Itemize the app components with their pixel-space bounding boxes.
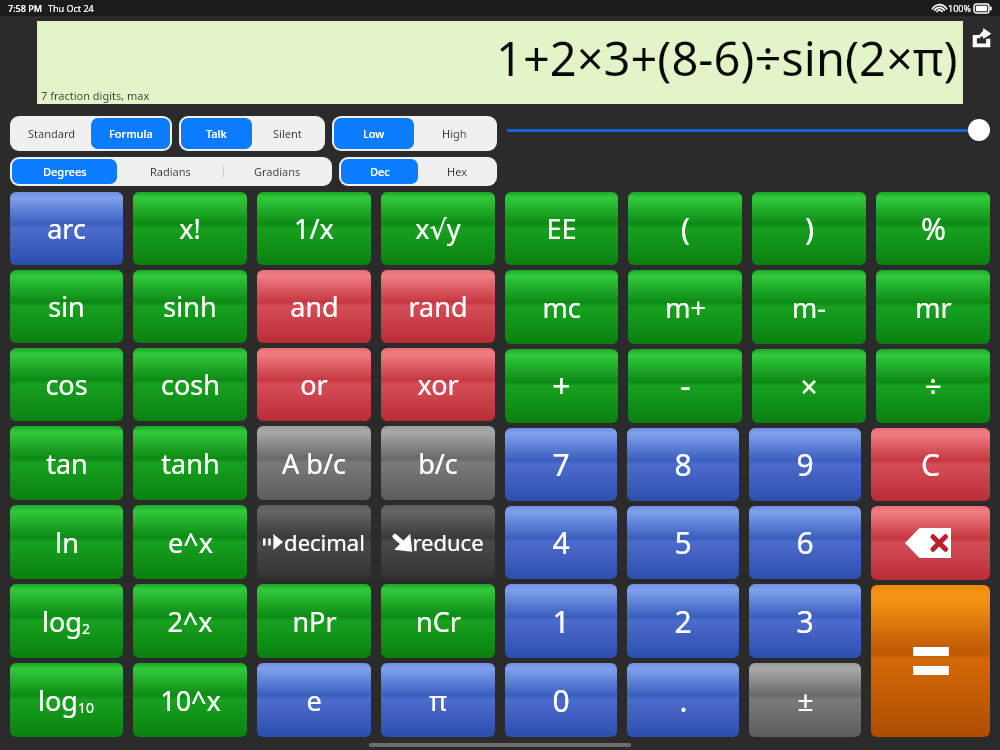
button[interactable]: rand bbox=[381, 270, 495, 343]
staticText: + bbox=[552, 364, 571, 408]
button[interactable]: m- bbox=[752, 270, 866, 344]
staticText: b/c bbox=[418, 445, 458, 482]
staticText: reduce bbox=[412, 527, 484, 557]
button[interactable]: C bbox=[871, 428, 990, 501]
button[interactable]: 10^x bbox=[133, 663, 247, 737]
button[interactable]: e^x bbox=[133, 505, 247, 579]
button[interactable]: nPr bbox=[257, 584, 371, 658]
button[interactable]: A b/c bbox=[257, 426, 371, 500]
staticText: mr bbox=[915, 289, 952, 326]
button[interactable]: Silent bbox=[252, 118, 323, 149]
button[interactable]: Dec bbox=[341, 159, 418, 184]
button[interactable]: 0 bbox=[505, 663, 617, 737]
button[interactable]: 8 bbox=[627, 428, 739, 501]
button[interactable]: x! bbox=[133, 192, 247, 265]
button[interactable]: - bbox=[628, 349, 742, 423]
button[interactable]: Low bbox=[334, 118, 414, 149]
button[interactable]: 2^x bbox=[133, 584, 247, 658]
staticText: Low bbox=[363, 126, 385, 141]
button[interactable]: 9 bbox=[749, 428, 861, 501]
staticText: ln bbox=[55, 524, 79, 561]
button[interactable]: π bbox=[381, 663, 495, 737]
staticText: 9 bbox=[796, 444, 814, 485]
staticText: and bbox=[290, 288, 339, 325]
button[interactable]: 6 bbox=[749, 506, 861, 579]
staticText: 4 bbox=[552, 522, 570, 563]
staticText: sinh bbox=[163, 288, 217, 325]
button[interactable]: Backspace bbox=[871, 506, 990, 580]
staticText: Gradians bbox=[254, 164, 301, 179]
staticText: Thu Oct 24 bbox=[48, 2, 94, 14]
button[interactable]: 5 bbox=[627, 506, 739, 579]
button[interactable]: × bbox=[752, 349, 866, 423]
button[interactable]: x√y bbox=[381, 192, 495, 265]
staticText: A b/c bbox=[282, 445, 346, 482]
staticText: EE bbox=[546, 210, 577, 247]
button[interactable]: cosh bbox=[133, 348, 247, 421]
button[interactable]: % bbox=[876, 192, 990, 265]
button[interactable]: m+ bbox=[628, 270, 742, 344]
button[interactable]: sin bbox=[10, 270, 123, 343]
staticText: . bbox=[679, 680, 688, 721]
button[interactable]: Degrees bbox=[12, 159, 117, 184]
button[interactable]: tan bbox=[10, 426, 123, 500]
button[interactable]: ( bbox=[628, 192, 742, 265]
staticText: 7:58 PM bbox=[8, 2, 42, 14]
button[interactable]: arc bbox=[10, 192, 123, 265]
staticText: Talk bbox=[206, 126, 227, 141]
button[interactable]: 7 bbox=[505, 428, 617, 501]
staticText: 7 bbox=[552, 444, 570, 485]
staticText: 6 bbox=[796, 522, 814, 563]
button[interactable]: cos bbox=[10, 348, 123, 421]
button[interactable]: ÷ bbox=[876, 349, 990, 423]
button[interactable]: Standard bbox=[12, 118, 91, 149]
staticText: 1+2×3+(8-6)÷sin(2×π) bbox=[496, 26, 958, 90]
button[interactable]: ± bbox=[749, 663, 861, 737]
button[interactable]: Talk bbox=[181, 118, 252, 149]
staticText: 2 bbox=[674, 601, 692, 642]
button[interactable]: Hex bbox=[418, 159, 495, 184]
button[interactable]: Gradians bbox=[224, 159, 330, 184]
button[interactable]: + bbox=[505, 349, 618, 423]
staticText: Silent bbox=[273, 126, 302, 141]
button[interactable]: High bbox=[414, 118, 495, 149]
staticText: 1/x bbox=[294, 210, 334, 247]
button[interactable]: mc bbox=[505, 270, 618, 344]
staticText: cosh bbox=[161, 366, 220, 403]
button[interactable]: e bbox=[257, 663, 371, 737]
button[interactable]: decimal bbox=[257, 505, 371, 579]
button[interactable]: 1/x bbox=[257, 192, 371, 265]
button[interactable]: Radians bbox=[117, 159, 223, 184]
button[interactable]: and bbox=[257, 270, 371, 343]
button[interactable]: EE bbox=[505, 192, 618, 265]
staticText: ( bbox=[681, 208, 690, 249]
button[interactable]: ) bbox=[752, 192, 866, 265]
button[interactable]: 2 bbox=[627, 584, 739, 658]
staticText: tan bbox=[46, 445, 88, 482]
button[interactable]: 1 bbox=[505, 584, 617, 658]
staticText: 5 bbox=[674, 522, 692, 563]
button[interactable]: xor bbox=[381, 348, 495, 421]
staticText: nCr bbox=[416, 603, 461, 640]
button[interactable]: Share bbox=[963, 16, 1000, 116]
staticText: e^x bbox=[168, 524, 213, 561]
button[interactable]: 4 bbox=[505, 506, 617, 579]
button[interactable]: b/c bbox=[381, 426, 495, 500]
button[interactable]: log bbox=[10, 584, 123, 658]
button[interactable]: log bbox=[10, 663, 123, 737]
button[interactable]: tanh bbox=[133, 426, 247, 500]
button[interactable]: or bbox=[257, 348, 371, 421]
staticText: Hex bbox=[447, 164, 467, 179]
button[interactable]: reduce bbox=[381, 505, 495, 579]
button[interactable]: Formula bbox=[91, 118, 170, 149]
button[interactable]: 3 bbox=[749, 584, 861, 658]
button[interactable]: sinh bbox=[133, 270, 247, 343]
staticText: mc bbox=[542, 289, 581, 326]
staticText: % bbox=[921, 208, 946, 249]
button[interactable]: nCr bbox=[381, 584, 495, 658]
button[interactable]: mr bbox=[876, 270, 990, 344]
button[interactable]: Value slider bbox=[507, 119, 990, 141]
button[interactable]: ln bbox=[10, 505, 123, 579]
button[interactable]: Equals bbox=[871, 585, 990, 737]
button[interactable]: . bbox=[627, 663, 739, 737]
